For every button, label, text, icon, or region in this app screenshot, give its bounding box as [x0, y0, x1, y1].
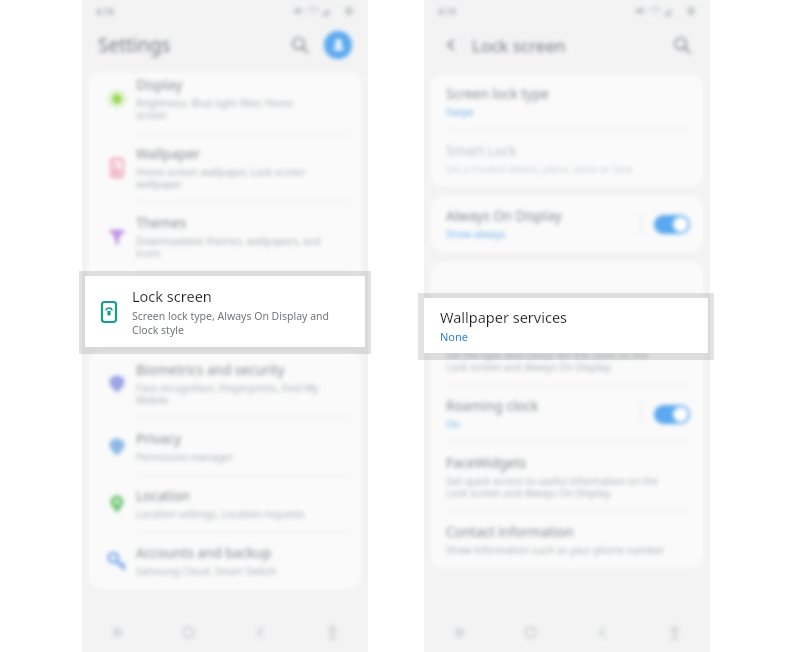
- button[interactable]: Recents: [82, 612, 153, 652]
- button[interactable]: Accounts and backup: [88, 533, 362, 589]
- button[interactable]: Account: [324, 31, 352, 59]
- staticText: Always On Display: [446, 207, 562, 225]
- button[interactable]: Display: [88, 72, 362, 133]
- staticText: Lock screen: [136, 283, 211, 301]
- staticText: None: [440, 329, 469, 344]
- staticText: Set the type and colour for the clock on…: [446, 348, 649, 374]
- button[interactable]: Recents: [424, 612, 495, 652]
- staticText: Privacy: [136, 430, 182, 448]
- staticText: Contact information: [446, 523, 574, 541]
- button[interactable]: Lock screen: [85, 276, 365, 347]
- staticText: Lock screen: [132, 286, 212, 306]
- staticText: Show information such as your phone numb…: [446, 543, 665, 557]
- button[interactable]: Search: [286, 31, 314, 59]
- button[interactable]: Wallpaper services: [424, 298, 708, 353]
- staticText: 4:18: [96, 5, 114, 17]
- button[interactable]: Clock style: [430, 317, 704, 385]
- staticText: Clock style: [446, 328, 513, 346]
- button[interactable]: Themes: [88, 203, 362, 271]
- staticText: Themes: [136, 214, 187, 232]
- staticText: Brightness, Blue light filter, Home scre…: [136, 96, 294, 122]
- staticText: Biometrics and security: [136, 361, 285, 379]
- button[interactable]: Smart Lock: [430, 131, 704, 187]
- staticText: On: [446, 417, 460, 431]
- staticText: Face recognition, Fingerprints, Find My …: [136, 381, 319, 407]
- staticText: Home screen wallpaper, Lock screen wallp…: [136, 165, 306, 191]
- staticText: Roaming clock: [446, 397, 539, 415]
- button[interactable]: Back: [438, 32, 464, 58]
- button[interactable]: Location: [88, 476, 362, 532]
- button[interactable]: Always On Display: [430, 196, 704, 252]
- staticText: Show always: [446, 227, 506, 241]
- button[interactable]: Wallpaper: [88, 134, 362, 202]
- button[interactable]: Biometrics and security: [88, 350, 362, 418]
- staticText: Screen lock type, Always On Display and …: [132, 309, 329, 337]
- button[interactable]: Lock screen: [88, 272, 362, 340]
- staticText: Set a trusted device, place, voice or fa…: [446, 162, 633, 176]
- staticText: Get quick access to useful information o…: [446, 474, 659, 500]
- staticText: Screen lock type, Always On Display and …: [136, 303, 324, 329]
- staticText: Location settings, Location requests: [136, 507, 305, 521]
- button[interactable]: Screen lock type: [430, 74, 704, 130]
- staticText: Accounts and backup: [136, 544, 272, 562]
- button[interactable]: Contact information: [430, 512, 704, 568]
- button[interactable]: Accessibility: [296, 612, 368, 652]
- button[interactable]: FaceWidgets: [430, 443, 704, 511]
- button[interactable]: Always On Display: [654, 215, 690, 234]
- staticText: Wallpaper: [136, 145, 201, 163]
- staticText: 4:19: [438, 5, 456, 17]
- staticText: Location: [136, 487, 191, 505]
- button[interactable]: Search: [668, 31, 696, 59]
- staticText: Downloadable themes, wallpapers, and ico…: [136, 234, 321, 260]
- staticText: Swipe: [446, 105, 474, 119]
- staticText: Screen lock type: [446, 85, 549, 103]
- staticText: Samsung Cloud, Smart Switch: [136, 564, 277, 578]
- staticText: Display: [136, 76, 183, 94]
- button[interactable]: Accessibility: [638, 612, 710, 652]
- button[interactable]: Roaming clock: [654, 405, 690, 424]
- staticText: Settings: [98, 32, 171, 58]
- staticText: Lock screen: [472, 34, 566, 57]
- button[interactable]: Roaming clock: [430, 386, 704, 442]
- staticText: Wallpaper services: [440, 307, 568, 327]
- button[interactable]: Privacy: [88, 419, 362, 475]
- staticText: Permission manager: [136, 450, 234, 464]
- staticText: Smart Lock: [446, 142, 517, 160]
- staticText: FaceWidgets: [446, 454, 527, 472]
